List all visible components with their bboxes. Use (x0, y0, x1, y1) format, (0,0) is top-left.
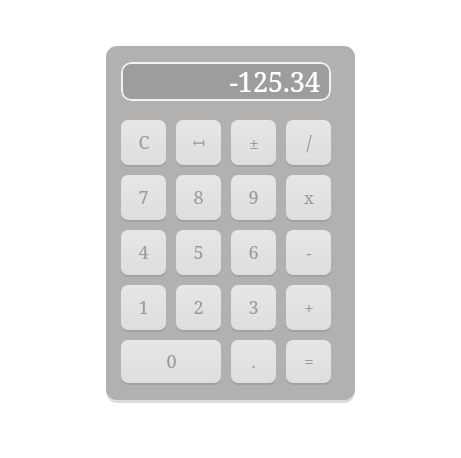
staticText: 4 (138, 240, 149, 265)
button[interactable]: -125.34 (121, 62, 331, 101)
staticText: = (304, 350, 314, 373)
staticText: 1 (138, 295, 149, 320)
button[interactable]: Decimal point (231, 340, 276, 383)
staticText: x (304, 186, 314, 209)
staticText: 9 (248, 185, 259, 210)
staticText: ± (249, 131, 259, 154)
button[interactable]: 5 (176, 230, 221, 275)
button[interactable]: 7 (121, 175, 166, 220)
staticText: -125.34 (229, 63, 320, 100)
button[interactable]: Backspace (176, 120, 221, 165)
button[interactable]: Clear (121, 120, 166, 165)
button[interactable]: 2 (176, 285, 221, 330)
button[interactable]: Divide (286, 120, 331, 165)
staticText: 8 (193, 185, 204, 210)
staticText: 6 (248, 240, 259, 265)
button[interactable]: 1 (121, 285, 166, 330)
staticText: . (251, 351, 256, 373)
button[interactable]: 4 (121, 230, 166, 275)
button[interactable]: Plus (286, 285, 331, 330)
staticText: C (138, 130, 150, 155)
button[interactable]: Plus minus sign (231, 120, 276, 165)
staticText: 5 (193, 240, 204, 265)
staticText: + (304, 296, 314, 319)
button[interactable]: Multiply (286, 175, 331, 220)
staticText: 0 (166, 349, 177, 374)
button[interactable]: 8 (176, 175, 221, 220)
button[interactable]: Minus (286, 230, 331, 275)
staticText: ↤ (192, 134, 205, 151)
staticText: 3 (248, 295, 259, 320)
button[interactable]: 3 (231, 285, 276, 330)
staticText: 2 (193, 295, 204, 320)
staticText: / (306, 130, 312, 156)
button[interactable]: 9 (231, 175, 276, 220)
staticText: - (306, 241, 312, 264)
staticText: 7 (138, 185, 149, 210)
button[interactable]: Equals (286, 340, 331, 383)
button[interactable]: 6 (231, 230, 276, 275)
button[interactable]: 0 (121, 340, 221, 383)
